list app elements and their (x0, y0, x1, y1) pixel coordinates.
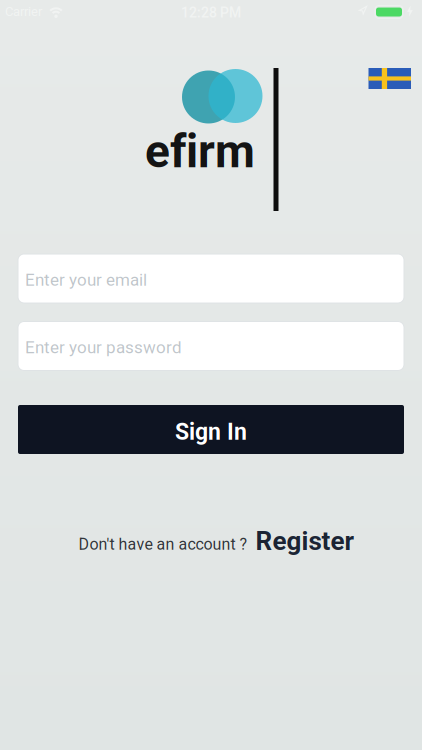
button[interactable]: Enter your email (18, 254, 404, 303)
staticText: ef‌irm (145, 124, 255, 178)
staticText: Register (255, 526, 354, 556)
staticText: Enter your password (25, 337, 182, 357)
button[interactable]: Change language (368, 68, 411, 89)
button[interactable]: Register (258, 527, 357, 557)
staticText: Don't have an account ? (78, 535, 247, 554)
staticText: Enter your email (25, 270, 147, 290)
staticText: Carrier (5, 4, 42, 19)
staticText: Sign In (175, 418, 247, 445)
button[interactable]: Enter your password (18, 321, 404, 370)
staticText: 12:28 PM (181, 4, 241, 21)
button[interactable]: Sign In (18, 405, 404, 454)
